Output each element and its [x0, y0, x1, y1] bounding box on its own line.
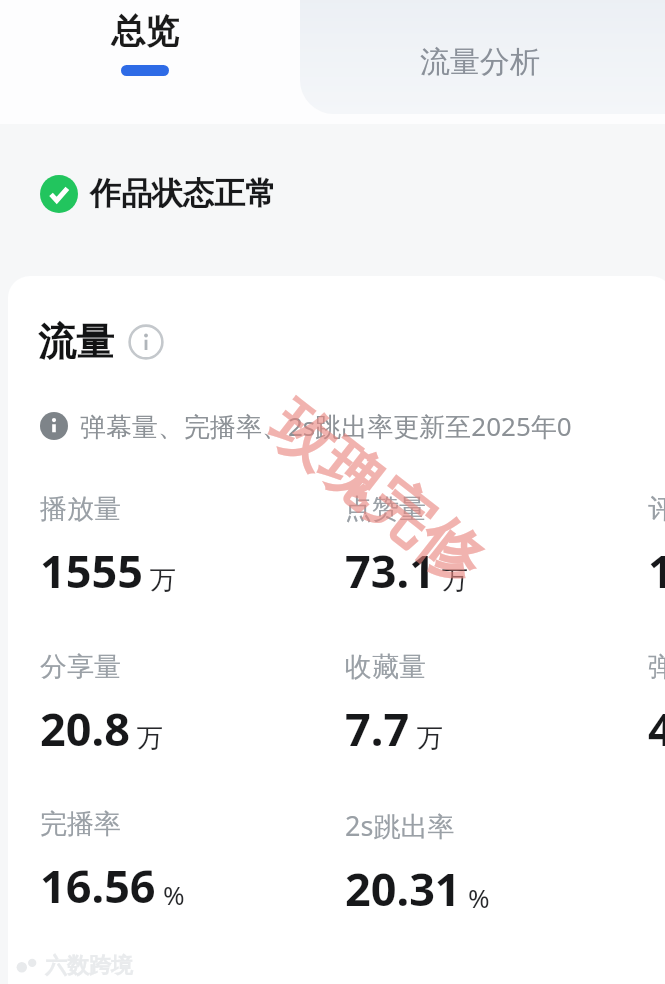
staticText: 20.31 — [345, 858, 461, 919]
button[interactable]: 收藏量 — [345, 650, 625, 759]
staticText: 弹幕量、完播率、2s跳出率更新至2025年0 — [80, 408, 572, 444]
button[interactable]: 流量说明 — [128, 324, 164, 360]
staticText: 播放量 — [40, 492, 121, 526]
button[interactable]: 弹 — [648, 650, 665, 759]
staticText: 分享量 — [40, 650, 121, 684]
staticText: 点赞量 — [345, 492, 426, 526]
staticText: 1 — [648, 540, 665, 601]
staticText: 完播率 — [40, 807, 121, 841]
button[interactable]: 分享量 — [40, 650, 320, 759]
staticText: 1555 — [40, 540, 143, 601]
button[interactable]: 作品状态正常 — [40, 174, 276, 213]
button[interactable]: 播放量 — [40, 492, 320, 601]
staticText: % — [163, 877, 185, 912]
staticText: 弹 — [648, 650, 665, 684]
staticText: 73.1 — [345, 540, 435, 601]
staticText: 评 — [648, 492, 665, 526]
staticText: 流量分析 — [420, 43, 540, 81]
staticText: 玫瑰完修 — [255, 387, 499, 601]
staticText: 万 — [137, 722, 163, 755]
button[interactable]: 点赞量 — [345, 492, 625, 601]
staticText: 收藏量 — [345, 650, 426, 684]
button[interactable]: 流量 — [38, 318, 164, 366]
staticText: % — [468, 880, 490, 915]
button[interactable]: 弹幕量、完播率、2s跳出率更新至2025年0 — [40, 408, 572, 444]
button[interactable]: 2s跳出率 — [345, 807, 625, 919]
button[interactable]: 完播率 — [40, 807, 320, 916]
staticText: 流量 — [38, 318, 114, 366]
button[interactable]: 总览 — [70, 10, 220, 110]
staticText: 六数跨境 — [45, 952, 133, 980]
staticText: 20.8 — [40, 698, 130, 759]
button[interactable]: 评 — [648, 492, 665, 601]
button[interactable] — [300, 0, 665, 114]
staticText: 作品状态正常 — [90, 174, 276, 213]
staticText: 7.7 — [345, 698, 410, 759]
staticText: 总览 — [111, 10, 179, 53]
button[interactable]: 流量分析 — [385, 34, 575, 90]
staticText: 万 — [442, 564, 468, 597]
staticText: 2s跳出率 — [345, 807, 455, 844]
staticText: 16.56 — [40, 855, 156, 916]
staticText: 4 — [648, 698, 665, 759]
staticText: 万 — [150, 564, 176, 597]
staticText: 万 — [417, 722, 443, 755]
